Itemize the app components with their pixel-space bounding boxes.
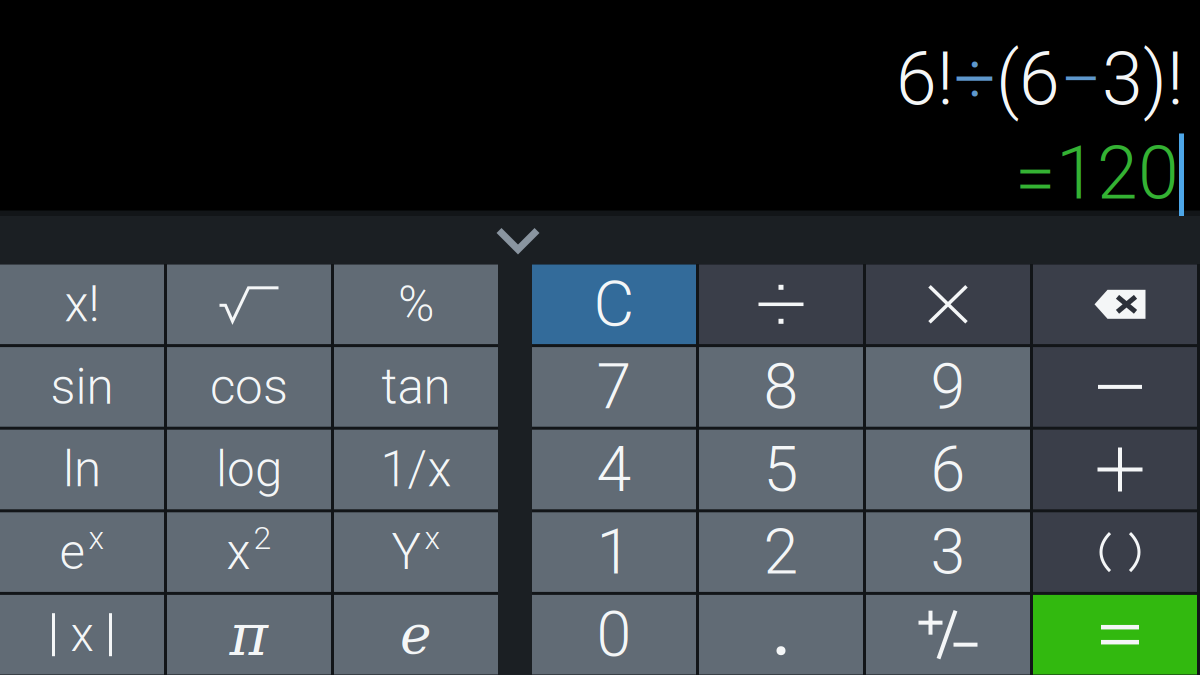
staticText: x [88, 519, 104, 557]
button[interactable]: 0 [532, 595, 696, 674]
staticText: x [70, 607, 93, 663]
staticText: 1/x [380, 441, 451, 498]
button[interactable]: 8 [699, 347, 863, 427]
staticText: e [400, 604, 432, 666]
button[interactable]: 7 [532, 347, 696, 427]
button[interactable]: e [0, 512, 164, 592]
staticText: sin [50, 358, 113, 416]
button[interactable]: x [167, 512, 331, 592]
button[interactable]: e [334, 595, 498, 674]
button[interactable]: % [334, 264, 498, 344]
button[interactable]: Multiply [866, 264, 1030, 344]
staticText: = [1015, 135, 1056, 221]
staticText: 6! [896, 37, 954, 122]
staticText: 8 [763, 350, 798, 424]
button[interactable]: π [167, 595, 331, 674]
staticText: 9 [930, 350, 965, 424]
staticText: 5 [763, 433, 798, 506]
staticText: x! [64, 275, 99, 333]
staticText: − [1060, 37, 1102, 122]
staticText: x [424, 519, 440, 557]
staticText: 1 [596, 515, 631, 589]
button[interactable]: C [532, 264, 696, 344]
button[interactable]: Equals [1033, 595, 1197, 674]
button[interactable]: cos [167, 347, 331, 427]
button[interactable]: Plus [1033, 430, 1197, 509]
staticText: cos [210, 358, 288, 416]
staticText: Y [391, 523, 421, 581]
staticText: 2 [763, 515, 798, 589]
button[interactable]: Toggle sign [866, 595, 1030, 674]
button[interactable]: 4 [532, 430, 696, 509]
button[interactable]: Decimal point [699, 595, 863, 674]
button[interactable]: Divide [699, 264, 863, 344]
staticText: ln [63, 441, 101, 498]
button[interactable]: Minus [1033, 347, 1197, 427]
staticText: π [229, 601, 268, 669]
staticText: e [59, 523, 85, 581]
button[interactable]: 2 [699, 512, 863, 592]
button[interactable]: 3 [866, 512, 1030, 592]
button[interactable]: log [167, 430, 331, 509]
button[interactable]: 1 [532, 512, 696, 592]
button[interactable]: Parentheses [1033, 512, 1197, 592]
staticText: % [398, 275, 434, 333]
staticText: 2 [253, 519, 271, 557]
staticText: log [216, 441, 282, 498]
staticText: ÷ [954, 37, 996, 122]
staticText: 0 [596, 598, 631, 671]
button[interactable]: Y [334, 512, 498, 592]
button[interactable]: 6 [866, 430, 1030, 509]
staticText: tan [381, 358, 450, 416]
staticText: 6 [930, 433, 965, 506]
staticText: (6 [996, 37, 1060, 122]
staticText: 120 [1056, 130, 1179, 216]
button[interactable]: Hide keypad [490, 216, 546, 264]
staticText: 3 [930, 515, 965, 589]
button[interactable]: x! [0, 264, 164, 344]
staticText: 3)! [1102, 37, 1184, 122]
button[interactable]: Backspace [1033, 264, 1197, 344]
staticText: C [593, 268, 634, 341]
staticText: 7 [596, 350, 631, 424]
staticText: x [226, 523, 250, 581]
button[interactable]: 1/x [334, 430, 498, 509]
staticText: 4 [596, 433, 631, 506]
button[interactable]: sin [0, 347, 164, 427]
button[interactable]: 5 [699, 430, 863, 509]
button[interactable]: Square root [167, 264, 331, 344]
button[interactable]: ln [0, 430, 164, 509]
button[interactable]: 9 [866, 347, 1030, 427]
button[interactable]: Absolute value [0, 595, 164, 674]
button[interactable]: tan [334, 347, 498, 427]
